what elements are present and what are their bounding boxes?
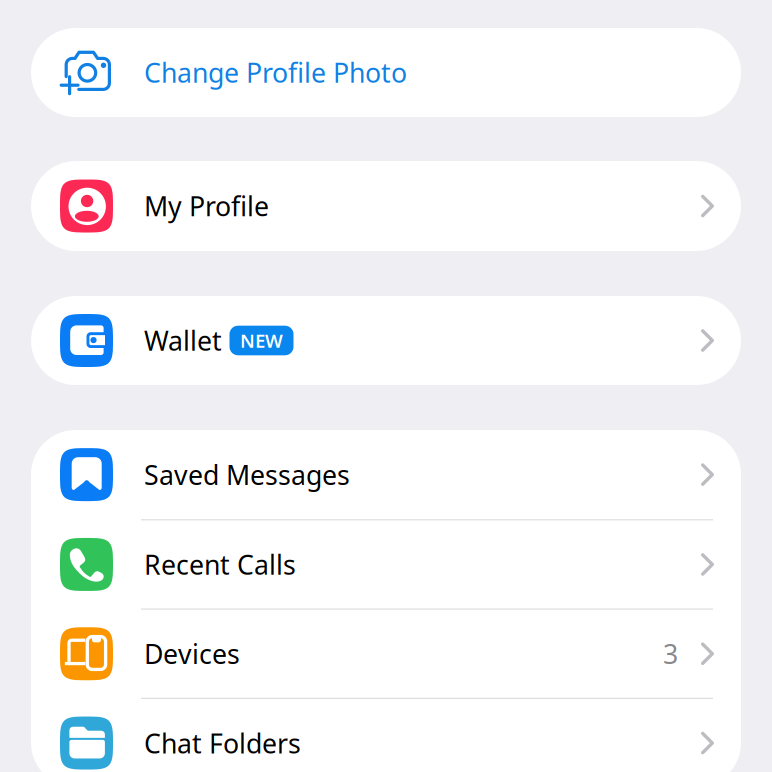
staticText: Saved Messages [144,457,350,492]
button[interactable]: Recent Calls [31,520,741,608]
staticText: Chat Folders [144,725,301,761]
staticText: 3 [663,636,678,671]
staticText: Wallet [144,323,222,358]
staticText: Change Profile Photo [144,55,407,90]
staticText: NEW [240,328,283,353]
staticText: My Profile [144,188,269,224]
button[interactable]: My Profile [31,161,741,251]
button[interactable]: Chat Folders [31,699,741,772]
staticText: Devices [144,636,240,671]
button[interactable]: Saved Messages [31,430,741,519]
button[interactable]: Devices [31,610,741,698]
button[interactable]: Change Profile Photo [31,28,741,117]
staticText: Recent Calls [144,547,296,582]
button[interactable]: Wallet [31,296,741,385]
